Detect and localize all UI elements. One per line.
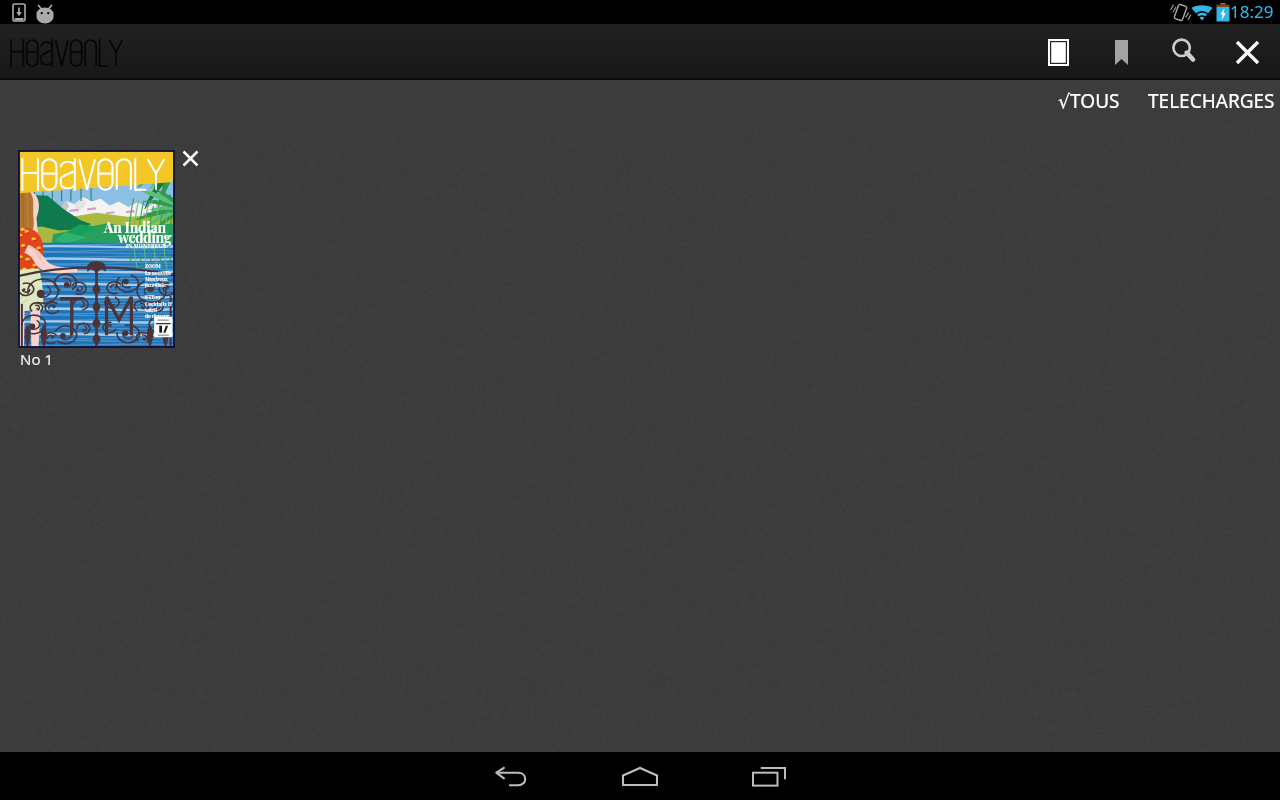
button[interactable]: Close	[1215, 24, 1280, 80]
button[interactable]: √TOUS	[1049, 80, 1129, 122]
staticText: An Indian	[104, 218, 166, 237]
button[interactable]: Remove magazine	[180, 148, 200, 168]
button[interactable]: Recent apps	[705, 752, 833, 800]
button[interactable]: Heavenly No 1 – open issue	[19, 151, 174, 347]
staticText: IN MONTREUX	[126, 243, 167, 250]
staticText: No 1	[20, 349, 53, 369]
button[interactable]: Search	[1153, 24, 1215, 80]
staticText: ZOOM La nouvelle Montreux Jazz Cafe	[145, 263, 172, 288]
staticText: √TOUS	[1058, 88, 1120, 114]
button[interactable]: Page view	[1028, 24, 1089, 80]
button[interactable]: Bookmarks	[1089, 24, 1153, 80]
button[interactable]: TELECHARGES	[1139, 80, 1280, 122]
button[interactable]: Back	[447, 752, 575, 800]
button[interactable]: Home	[576, 752, 704, 800]
staticText: wedding	[118, 228, 172, 247]
staticText: TELECHARGES	[1148, 88, 1275, 114]
staticText: 18:29	[1230, 0, 1274, 23]
staticText: ETE 13 Cocktails & soleil de rigueur	[145, 294, 173, 319]
